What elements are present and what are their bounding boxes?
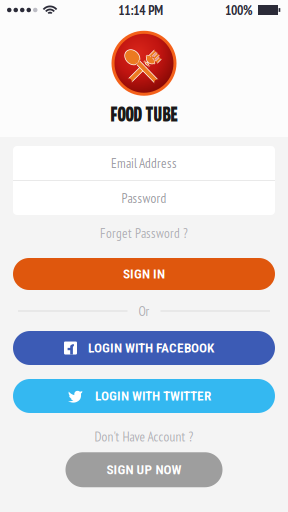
button[interactable]: SIGN UP NOW [65,452,222,487]
staticText: 100% [225,1,253,19]
button[interactable]: LOGIN WITH TWITTER [13,379,275,413]
button[interactable]: Forget Password ? [100,222,188,244]
staticText: Email Address [111,154,177,172]
staticText: Or [138,302,149,320]
staticText: Don't Have Account ? [94,428,193,445]
staticText: Password [121,189,166,207]
staticText: SIGN IN [123,266,165,282]
button[interactable]: Password [13,181,275,215]
staticText: 11:14 PM [118,1,163,19]
staticText: Forget Password ? [100,224,188,242]
button[interactable]: LOGIN WITH FACEBOOK [13,331,275,365]
staticText: LOGIN WITH TWITTER [95,388,211,404]
staticText: FOOD TUBE [110,101,177,126]
button[interactable]: Email Address [13,146,275,180]
button[interactable]: SIGN IN [13,258,275,290]
staticText: LOGIN WITH FACEBOOK [88,340,214,356]
staticText: SIGN UP NOW [106,462,181,477]
